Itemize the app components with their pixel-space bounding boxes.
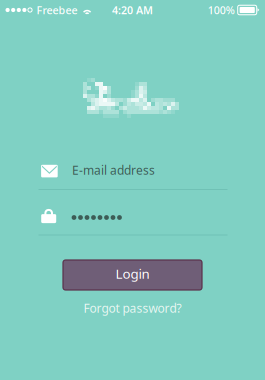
staticText: E-mail address — [72, 162, 155, 178]
button[interactable] — [72, 204, 232, 230]
button[interactable]: E-mail address — [72, 157, 232, 183]
staticText: Forgot password? — [83, 300, 181, 316]
button[interactable]: Forgot password? — [67, 300, 197, 316]
staticText: Login — [115, 265, 149, 282]
button[interactable]: Login — [63, 260, 202, 290]
staticText: 100% — [208, 3, 235, 17]
staticText: Freebee — [37, 3, 78, 17]
staticText: 4:20 AM — [112, 3, 153, 17]
